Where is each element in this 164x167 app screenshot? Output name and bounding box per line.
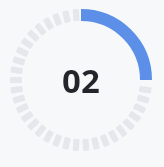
button[interactable]: Timer progress, 2 remaining <box>10 9 152 151</box>
staticText: 02 <box>62 58 100 103</box>
